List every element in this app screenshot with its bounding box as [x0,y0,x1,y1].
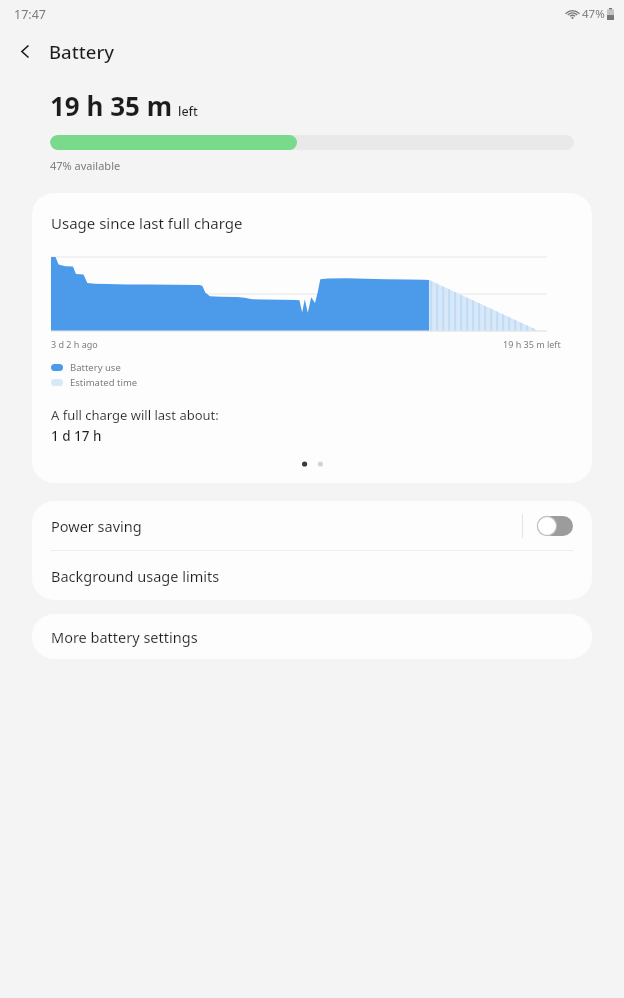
staticText: 47% available [50,158,121,173]
staticText: left [178,103,198,120]
button[interactable]: More battery settings [32,614,592,659]
button[interactable]: Background usage limits [32,551,592,600]
staticText: 3 d 2 h ago [51,338,98,350]
staticText: Usage since last full charge [51,213,243,233]
staticText: Estimated time [70,376,138,389]
staticText: More battery settings [51,627,198,647]
staticText: Battery use [70,361,121,374]
button[interactable]: Usage since last full charge [32,193,592,483]
staticText: Battery [49,39,115,64]
staticText: 17:47 [14,6,46,23]
button[interactable]: Back [4,30,46,72]
staticText: A full charge will last about: [51,406,219,424]
staticText: Power saving [51,516,142,536]
button[interactable]: Power saving toggle [537,516,573,536]
staticText: Background usage limits [51,566,220,586]
staticText: 19 h 35 m [50,88,173,123]
staticText: 1 d 17 h [51,427,102,445]
staticText: 19 h 35 m left [503,338,561,350]
button[interactable]: Power saving [32,501,592,550]
staticText: 47% [582,6,605,22]
